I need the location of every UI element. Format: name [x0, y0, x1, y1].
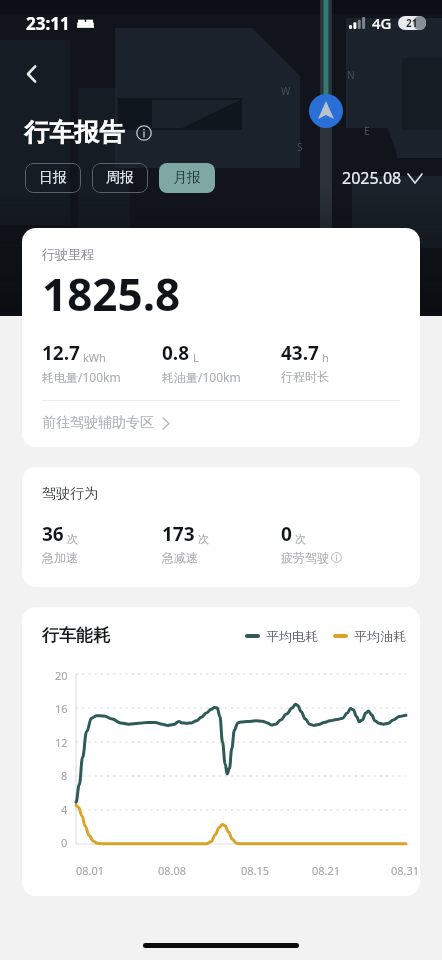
staticText: 耗电量/100km — [42, 369, 121, 385]
staticText: 16 — [55, 701, 68, 716]
staticText: 次 — [295, 532, 306, 546]
button[interactable]: Back — [10, 52, 54, 96]
staticText: 20 — [55, 668, 68, 683]
staticText: 173 — [162, 521, 195, 547]
staticText: 1825.8 — [42, 264, 181, 324]
staticText: L — [193, 350, 199, 365]
staticText: 平均油耗 — [354, 628, 406, 644]
staticText: 次 — [67, 532, 78, 546]
staticText: h — [322, 350, 329, 365]
button[interactable]: 月报 — [159, 163, 215, 193]
button[interactable]: 前往驾驶辅助专区 — [22, 401, 420, 447]
staticText: 2025.08 — [342, 167, 402, 189]
button[interactable]: 日报 — [25, 163, 81, 193]
staticText: 驾驶行为 — [42, 485, 98, 503]
staticText: kWh — [83, 350, 106, 365]
staticText: 日报 — [39, 169, 67, 187]
staticText: 4G — [372, 13, 392, 33]
staticText: 08.21 — [312, 863, 341, 878]
staticText: 疲劳驾驶 — [281, 550, 329, 565]
staticText: 0 — [61, 835, 68, 850]
staticText: S — [297, 140, 303, 154]
staticText: 0 — [281, 521, 292, 547]
staticText: 前往驾驶辅助专区 — [42, 414, 154, 432]
staticText: 行车能耗 — [42, 625, 110, 646]
staticText: E — [364, 124, 370, 138]
staticText: 急减速 — [162, 550, 198, 565]
staticText: 12 — [55, 735, 68, 750]
button[interactable]: 周报 — [92, 163, 148, 193]
button[interactable]: 说明 — [133, 122, 155, 144]
staticText: 12.7 — [42, 340, 80, 366]
staticText: 08.15 — [241, 863, 270, 878]
staticText: 43.7 — [281, 340, 319, 366]
staticText: 行程时长 — [281, 369, 329, 384]
staticText: 次 — [198, 532, 209, 546]
button[interactable]: 2025.08 — [338, 163, 426, 193]
staticText: 周报 — [106, 169, 134, 187]
staticText: 0.8 — [162, 340, 190, 366]
staticText: 36 — [42, 521, 64, 547]
staticText: W — [281, 84, 291, 98]
staticText: 8 — [61, 768, 68, 783]
staticText: 平均电耗 — [266, 628, 318, 644]
staticText: 21 — [406, 16, 418, 30]
staticText: 23:11 — [26, 12, 70, 35]
staticText: N — [347, 68, 355, 82]
staticText: 08.31 — [391, 863, 420, 878]
staticText: 行车报告 — [24, 117, 124, 148]
staticText: 行驶里程 — [42, 246, 94, 262]
staticText: 08.01 — [76, 863, 105, 878]
staticText: 4 — [61, 802, 68, 817]
staticText: 急加速 — [42, 550, 78, 565]
staticText: 月报 — [173, 169, 201, 187]
staticText: 08.08 — [158, 863, 187, 878]
staticText: 耗油量/100km — [162, 369, 241, 385]
